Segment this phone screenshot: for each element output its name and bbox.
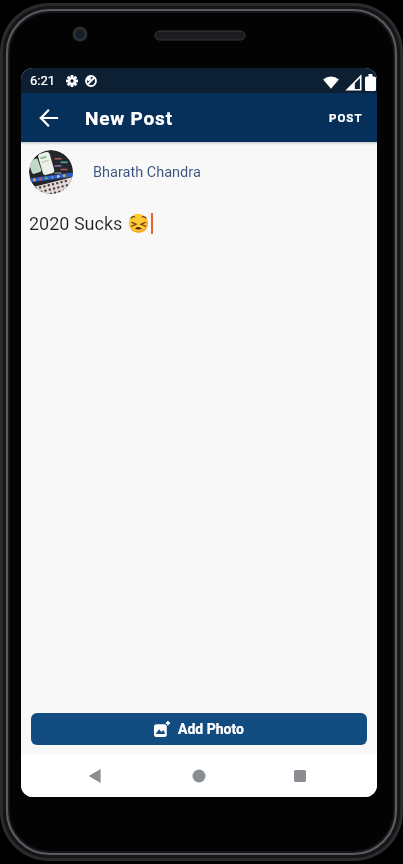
- button[interactable]: Add Photo: [31, 713, 367, 745]
- button[interactable]: [88, 769, 102, 783]
- button[interactable]: [294, 770, 306, 782]
- button[interactable]: [21, 93, 77, 142]
- staticText: Bharath Chandra: [93, 164, 201, 181]
- button[interactable]: [29, 150, 73, 194]
- staticText: 6:21: [30, 73, 56, 88]
- staticText: POST: [329, 111, 363, 124]
- staticText: New Post: [85, 107, 173, 129]
- button[interactable]: POST: [317, 93, 377, 142]
- staticText: 2020 Sucks: [29, 213, 127, 234]
- staticText: Add Photo: [178, 721, 244, 737]
- button[interactable]: [192, 769, 206, 783]
